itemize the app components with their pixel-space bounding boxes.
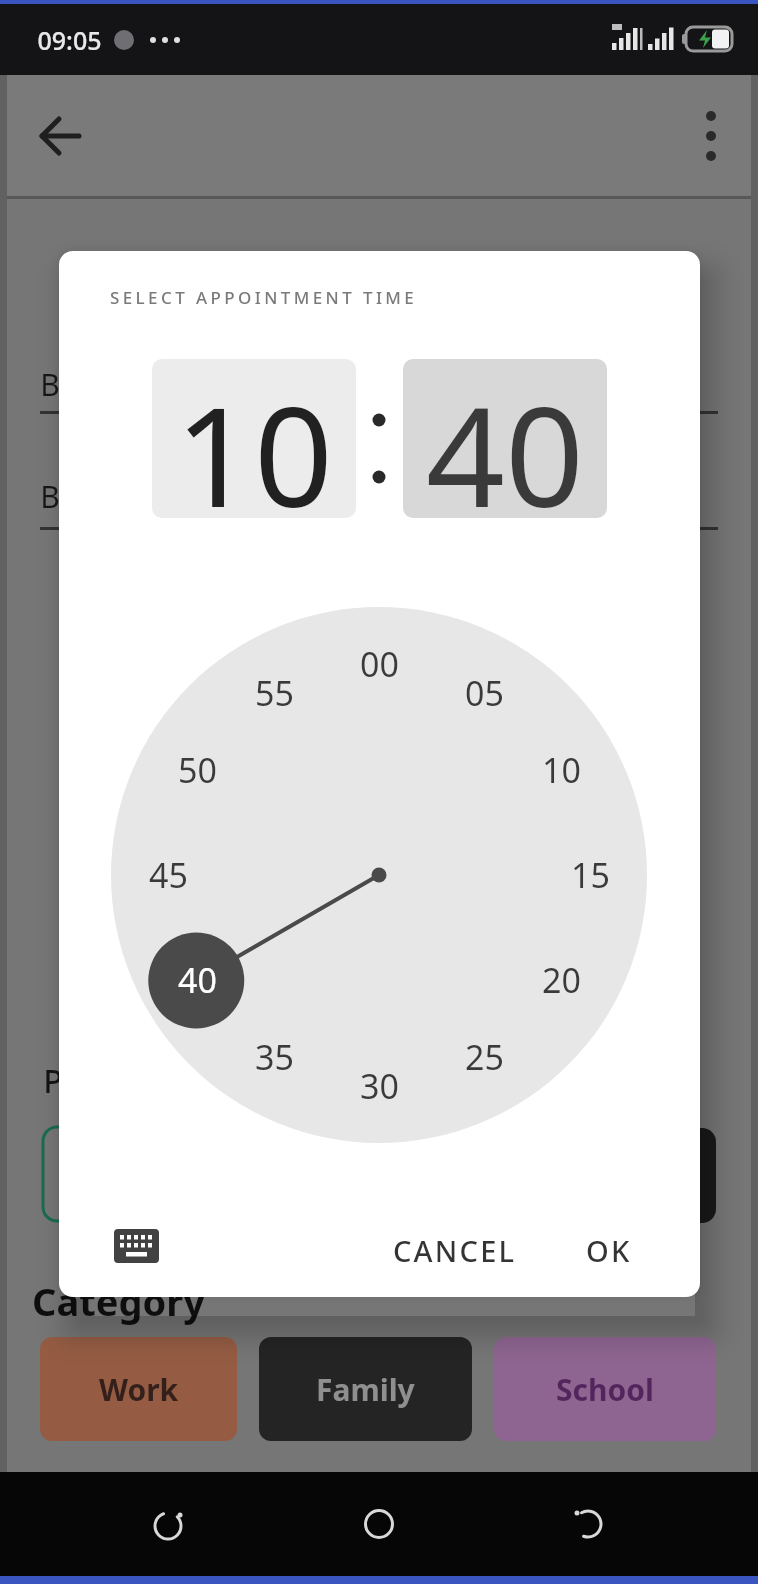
staticText: OK bbox=[586, 1231, 632, 1270]
button[interactable]: 50 bbox=[157, 740, 237, 800]
staticText: 15 bbox=[571, 852, 610, 898]
button[interactable]: 05 bbox=[444, 663, 524, 723]
button[interactable]: OK bbox=[570, 1230, 648, 1270]
button[interactable]: CANCEL bbox=[385, 1230, 525, 1270]
staticText: 10 bbox=[542, 747, 581, 793]
staticText: 35 bbox=[255, 1034, 294, 1080]
staticText: 09:05 bbox=[37, 23, 102, 57]
staticText: B bbox=[40, 364, 60, 405]
button[interactable]: 45 bbox=[128, 845, 208, 905]
button[interactable]: 40 bbox=[157, 950, 237, 1010]
staticText: SELECT APPOINTMENT TIME bbox=[110, 286, 418, 309]
staticText: Family bbox=[316, 1369, 415, 1410]
button[interactable]: 55 bbox=[234, 663, 314, 723]
staticText: P bbox=[43, 1059, 63, 1103]
staticText: 20 bbox=[542, 957, 581, 1003]
button[interactable]: 10 bbox=[152, 359, 356, 518]
button[interactable]: Family bbox=[259, 1337, 472, 1441]
button[interactable]: 25 bbox=[444, 1027, 524, 1087]
staticText: 40 bbox=[178, 957, 217, 1003]
staticText: 05 bbox=[465, 670, 504, 716]
button[interactable]: Work bbox=[40, 1337, 237, 1441]
staticText: B bbox=[40, 476, 60, 517]
staticText: 25 bbox=[465, 1034, 504, 1080]
staticText: Category bbox=[32, 1275, 205, 1327]
staticText: CANCEL bbox=[393, 1231, 517, 1270]
button[interactable]: 30 bbox=[339, 1056, 419, 1116]
staticText: 55 bbox=[255, 670, 294, 716]
button[interactable]: 20 bbox=[521, 950, 601, 1010]
staticText: 00 bbox=[360, 641, 399, 687]
staticText: 30 bbox=[360, 1063, 399, 1109]
button[interactable]: 40 bbox=[403, 359, 607, 518]
button[interactable]: 15 bbox=[550, 845, 630, 905]
staticText: 10 bbox=[175, 359, 333, 518]
button[interactable]: 35 bbox=[234, 1027, 314, 1087]
staticText: 50 bbox=[178, 747, 217, 793]
staticText: 45 bbox=[149, 852, 188, 898]
button[interactable]: 10 bbox=[521, 740, 601, 800]
staticText: School bbox=[556, 1369, 654, 1410]
button[interactable]: School bbox=[494, 1337, 716, 1441]
button[interactable]: 00 bbox=[339, 634, 419, 694]
staticText: 40 bbox=[426, 359, 584, 518]
staticText: Work bbox=[99, 1369, 179, 1410]
